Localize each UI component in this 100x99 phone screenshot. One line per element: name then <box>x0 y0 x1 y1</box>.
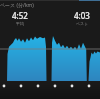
staticText: ベスト <box>76 21 89 26</box>
staticText: 平均 <box>16 21 24 26</box>
staticText: 4:03 <box>74 10 90 21</box>
staticText: ペース (分/km) <box>0 2 34 9</box>
staticText: 4:52 <box>12 10 28 21</box>
